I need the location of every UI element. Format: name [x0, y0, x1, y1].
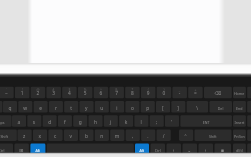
button[interactable]: Laptop with keyboard: [0, 0, 251, 157]
